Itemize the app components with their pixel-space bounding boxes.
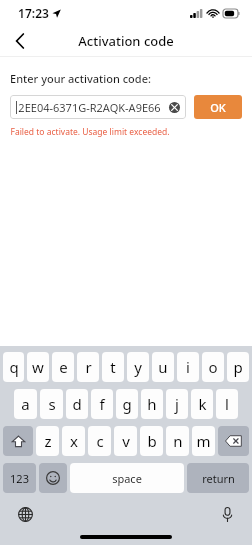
button[interactable]: b [140, 426, 163, 456]
button[interactable]: OK [194, 95, 242, 119]
button[interactable]: e [52, 352, 74, 382]
staticText: m [196, 431, 211, 451]
button[interactable]: a [14, 389, 37, 419]
button[interactable]: q [3, 352, 24, 382]
button[interactable]: w [27, 352, 49, 382]
staticText: v [122, 431, 130, 451]
button[interactable]: space [70, 463, 184, 493]
staticText: w [32, 357, 44, 377]
staticText: q [9, 357, 19, 377]
button[interactable]: d [66, 389, 88, 419]
staticText: j [175, 394, 179, 414]
button[interactable]: o [202, 352, 224, 382]
button[interactable]: return [187, 463, 249, 493]
staticText: u [158, 357, 168, 377]
button[interactable]: g [116, 389, 138, 419]
button[interactable]: h [141, 389, 163, 419]
button[interactable]: r [77, 352, 99, 382]
staticText: o [208, 357, 218, 377]
staticText: i [186, 357, 190, 377]
staticText: OK [210, 100, 226, 115]
button[interactable]: Emoji [39, 463, 67, 493]
button[interactable]: n [166, 426, 189, 456]
button[interactable]: y [127, 352, 149, 382]
button[interactable]: l [216, 389, 238, 419]
staticText: k [198, 394, 207, 414]
button[interactable]: 123 [3, 463, 36, 493]
staticText: r [85, 357, 92, 377]
staticText: x [70, 431, 78, 451]
staticText: a [21, 394, 30, 414]
staticText: space [112, 471, 142, 486]
staticText: return [202, 471, 235, 486]
button[interactable]: v [114, 426, 137, 456]
button[interactable]: t [102, 352, 124, 382]
button[interactable]: Dictation [216, 503, 238, 525]
staticText: g [122, 394, 132, 414]
button[interactable]: c [88, 426, 111, 456]
staticText: n [173, 431, 183, 451]
button[interactable]: Change keyboard language [14, 503, 36, 525]
button[interactable]: z [36, 426, 59, 456]
button[interactable]: Shift [3, 426, 33, 456]
button[interactable]: p [227, 352, 249, 382]
staticText: b [147, 431, 157, 451]
staticText: e [59, 357, 68, 377]
button[interactable]: j [166, 389, 188, 419]
button[interactable]: s [40, 389, 63, 419]
button[interactable]: 2EE04-6371G-R2AQK-A9E66 [10, 95, 186, 119]
staticText: Enter your activation code: [10, 71, 151, 86]
staticText: y [134, 357, 142, 377]
button[interactable]: m [192, 426, 215, 456]
staticText: l [225, 394, 229, 414]
staticText: 123 [10, 471, 29, 486]
button[interactable]: i [177, 352, 199, 382]
staticText: Activation code [78, 32, 174, 50]
button[interactable]: Back [0, 26, 40, 56]
button[interactable]: f [91, 389, 113, 419]
staticText: 17:23 [18, 5, 49, 21]
button[interactable]: Backspace [218, 426, 249, 456]
button[interactable]: u [152, 352, 174, 382]
staticText: d [72, 394, 82, 414]
staticText: 2EE04-6371G-R2AQK-A9E66 [18, 100, 161, 115]
staticText: p [233, 357, 243, 377]
staticText: s [48, 394, 56, 414]
staticText: c [96, 431, 104, 451]
staticText: f [99, 394, 105, 414]
button[interactable]: k [191, 389, 213, 419]
button[interactable]: Clear text [166, 99, 182, 115]
staticText: z [44, 431, 52, 451]
staticText: Failed to activate. Usage limit exceeded… [10, 126, 170, 138]
staticText: t [110, 357, 116, 377]
button[interactable]: x [62, 426, 85, 456]
staticText: h [147, 394, 157, 414]
